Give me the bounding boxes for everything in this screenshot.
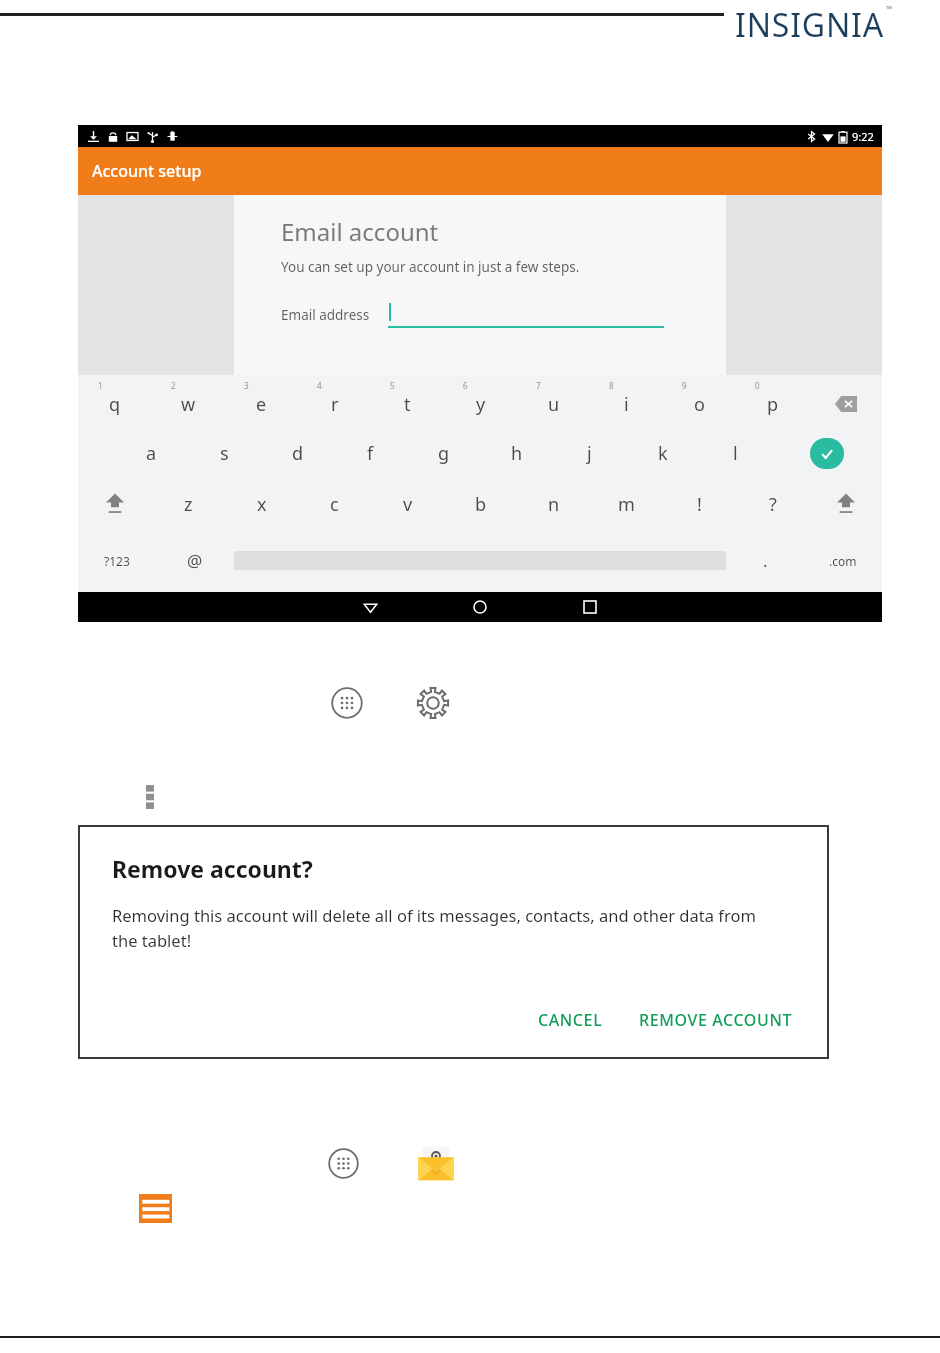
button[interactable]: 5 [371, 375, 444, 427]
staticText: h [511, 441, 523, 466]
staticText: INSIGNIA [735, 3, 884, 47]
button[interactable]: @ [156, 529, 234, 592]
staticText: b [475, 492, 487, 517]
button[interactable]: 0 [736, 375, 809, 427]
staticText: j [587, 441, 592, 466]
staticText: u [548, 392, 560, 417]
button[interactable]: All apps [328, 1148, 359, 1179]
staticText: ? [769, 492, 777, 517]
button[interactable]: ! [663, 479, 736, 529]
staticText: k [658, 441, 668, 466]
button[interactable]: More options [137, 779, 163, 815]
staticText: Email address [281, 306, 370, 324]
staticText: ! [697, 492, 702, 517]
staticText: 4 [317, 380, 322, 391]
staticText: 1 [98, 380, 103, 391]
button[interactable]: k [626, 427, 699, 479]
staticText: w [181, 392, 196, 417]
button[interactable]: Email app [416, 1144, 456, 1184]
staticText: z [184, 492, 193, 517]
staticText: 0 [755, 380, 760, 391]
button[interactable]: j [553, 427, 626, 479]
button[interactable]: Shift [78, 479, 152, 529]
button[interactable]: 6 [444, 375, 517, 427]
button[interactable]: 7 [517, 375, 590, 427]
staticText: y [476, 392, 486, 417]
button[interactable]: REMOVE ACCOUNT [631, 1003, 801, 1037]
button[interactable]: All apps [331, 687, 363, 719]
button[interactable]: Back [355, 592, 385, 622]
staticText: i [624, 392, 629, 417]
staticText: n [548, 492, 560, 517]
staticText: e [256, 392, 267, 417]
staticText: ?123 [104, 553, 130, 569]
staticText: You can set up your account in just a fe… [281, 258, 580, 276]
button[interactable]: . [726, 529, 804, 592]
staticText: 3 [244, 380, 249, 391]
button[interactable]: ?123 [78, 529, 156, 592]
staticText: REMOVE ACCOUNT [639, 1009, 793, 1031]
button[interactable]: ? [736, 479, 809, 529]
staticText: t [404, 392, 411, 417]
staticText: c [330, 492, 339, 517]
button[interactable] [388, 302, 664, 328]
staticText: m [618, 492, 635, 517]
button[interactable]: z [152, 479, 225, 529]
button[interactable]: b [444, 479, 517, 529]
staticText: r [331, 392, 339, 417]
button[interactable]: Recent apps [575, 592, 605, 622]
staticText: s [220, 441, 229, 466]
button[interactable]: x [225, 479, 298, 529]
button[interactable]: 8 [590, 375, 663, 427]
staticText: l [733, 441, 738, 466]
button[interactable]: s [188, 427, 261, 479]
staticText: p [767, 392, 779, 417]
staticText: . [763, 549, 768, 572]
button[interactable]: c [298, 479, 371, 529]
button[interactable]: 1 [78, 375, 152, 427]
staticText: 7 [536, 380, 541, 391]
button[interactable]: f [334, 427, 407, 479]
staticText: .com [829, 553, 857, 569]
button[interactable]: Done [772, 427, 882, 479]
staticText: Remove account? [112, 853, 313, 884]
button[interactable]: Backspace [809, 375, 882, 427]
button[interactable]: a [115, 427, 188, 479]
staticText: @ [187, 549, 203, 572]
staticText: f [367, 441, 374, 466]
staticText: ™ [886, 3, 893, 14]
staticText: v [403, 492, 413, 517]
button[interactable]: 3 [225, 375, 298, 427]
staticText: q [109, 392, 121, 417]
button[interactable]: m [590, 479, 663, 529]
staticText: Email account [281, 215, 439, 248]
staticText: 2 [171, 380, 176, 391]
button[interactable]: h [480, 427, 553, 479]
staticText: d [292, 441, 304, 466]
button[interactable]: l [699, 427, 772, 479]
staticText: 6 [463, 380, 468, 391]
button[interactable]: Settings [416, 686, 450, 720]
button[interactable]: Home [465, 592, 495, 622]
button[interactable]: 9 [663, 375, 736, 427]
button[interactable]: 4 [298, 375, 371, 427]
button[interactable]: Menu [133, 1188, 178, 1229]
button[interactable]: Space [234, 529, 726, 592]
button[interactable]: .com [804, 529, 882, 592]
button[interactable]: d [261, 427, 334, 479]
button[interactable]: n [517, 479, 590, 529]
button[interactable]: v [371, 479, 444, 529]
button[interactable]: CANCEL [530, 1003, 611, 1037]
staticText: x [257, 492, 267, 517]
staticText: CANCEL [538, 1009, 603, 1031]
staticText: g [438, 441, 450, 466]
button[interactable]: g [407, 427, 480, 479]
button[interactable]: 2 [152, 375, 225, 427]
staticText: 8 [609, 380, 614, 391]
staticText: Removing this account will delete all of… [112, 904, 767, 951]
staticText: 9:22 [852, 129, 874, 144]
staticText: a [146, 441, 157, 466]
button[interactable]: Account setup [78, 147, 882, 195]
staticText: 5 [390, 380, 395, 391]
button[interactable]: Shift [809, 479, 882, 529]
